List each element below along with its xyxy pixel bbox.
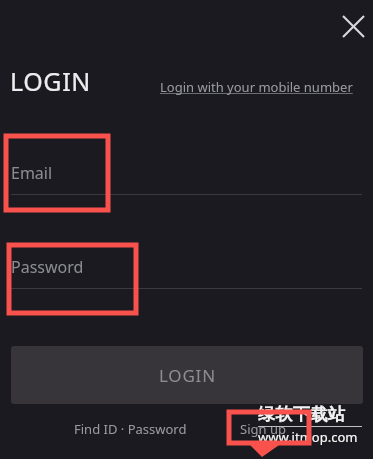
button[interactable]: LOGIN — [11, 346, 363, 404]
button[interactable]: Login with your mobile number — [158, 76, 355, 98]
button[interactable]: Sign up — [236, 417, 290, 441]
button[interactable]: Find ID · Password — [70, 417, 191, 441]
button[interactable]: Close — [333, 6, 373, 46]
staticText: Sign up — [240, 420, 286, 438]
staticText: LOGIN — [10, 64, 91, 98]
button[interactable]: Email — [11, 150, 362, 195]
staticText: Login with your mobile number — [160, 78, 353, 96]
staticText: Email — [11, 162, 53, 184]
staticText: LOGIN — [159, 364, 216, 387]
button[interactable]: Password — [11, 244, 362, 289]
button[interactable]: LOGIN — [10, 64, 91, 98]
staticText: www.itmop.com — [258, 428, 358, 446]
staticText: 绿软下载站 — [258, 404, 346, 425]
staticText: Password — [11, 256, 84, 278]
staticText: Find ID · Password — [74, 420, 187, 438]
